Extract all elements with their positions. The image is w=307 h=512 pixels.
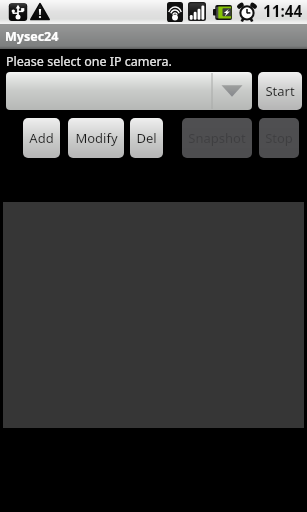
staticText: Stop — [265, 129, 293, 147]
button[interactable]: Stop — [259, 118, 299, 158]
button[interactable]: Snapshot — [182, 118, 252, 158]
staticText: Modify — [75, 129, 118, 147]
staticText: Add — [29, 129, 54, 147]
staticText: Please select one IP camera. — [6, 53, 172, 70]
staticText: Snapshot — [188, 129, 246, 147]
button[interactable]: Del — [130, 118, 163, 158]
staticText: Start — [265, 82, 295, 100]
button[interactable]: Modify — [68, 118, 124, 158]
button[interactable]: Start — [258, 72, 302, 110]
button[interactable]: Select IP camera — [6, 72, 252, 110]
button[interactable]: Add — [23, 118, 60, 158]
staticText: 11:44 — [263, 1, 303, 22]
staticText: Mysec24 — [5, 28, 59, 45]
staticText: Del — [136, 129, 157, 147]
